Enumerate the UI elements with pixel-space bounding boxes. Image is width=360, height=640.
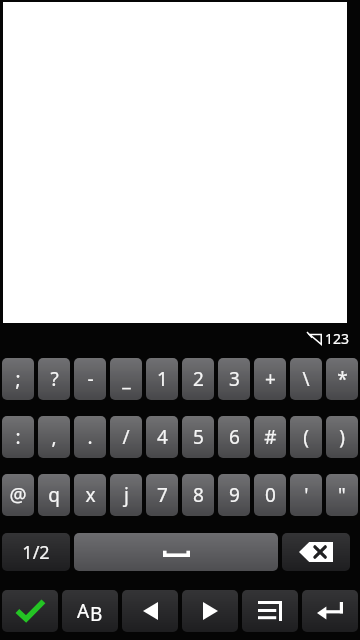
button[interactable]: x — [74, 474, 106, 516]
button[interactable]: * — [326, 358, 358, 400]
button[interactable]: + — [254, 358, 286, 400]
staticText: x — [85, 482, 96, 508]
staticText: / — [122, 424, 130, 450]
button[interactable]: j — [110, 474, 142, 516]
staticText: ' — [304, 482, 309, 508]
staticText: \ — [302, 366, 310, 392]
button[interactable]: Left — [122, 590, 178, 632]
staticText: + — [265, 366, 276, 392]
button[interactable]: 1 — [146, 358, 178, 400]
staticText: q — [48, 482, 60, 508]
staticText: " — [338, 482, 346, 508]
button[interactable]: q — [38, 474, 70, 516]
staticText: ? — [50, 366, 59, 392]
button[interactable]: Letters — [62, 590, 118, 632]
staticText: 1/2 — [22, 540, 50, 565]
button[interactable]: 1/2 — [2, 533, 70, 571]
button[interactable]: @ — [2, 474, 34, 516]
staticText: 2 — [193, 366, 204, 392]
button[interactable]: _ — [110, 358, 142, 400]
staticText: 4 — [157, 424, 168, 450]
button[interactable]: ; — [2, 358, 34, 400]
button[interactable]: Enter — [302, 590, 358, 632]
button[interactable]: 7 — [146, 474, 178, 516]
button[interactable]: ( — [290, 416, 322, 458]
button[interactable]: 9 — [218, 474, 250, 516]
staticText: , — [51, 424, 57, 450]
button[interactable]: 4 — [146, 416, 178, 458]
button[interactable]: 2 — [182, 358, 214, 400]
button[interactable]: - — [74, 358, 106, 400]
button[interactable]: 8 — [182, 474, 214, 516]
button[interactable]: : — [2, 416, 34, 458]
button[interactable]: 3 — [218, 358, 250, 400]
staticText: 7 — [157, 482, 168, 508]
button[interactable]: \ — [290, 358, 322, 400]
staticText: 9 — [229, 482, 240, 508]
staticText: - — [87, 366, 94, 392]
staticText: 123 — [325, 329, 350, 348]
button[interactable]: Confirm — [2, 590, 58, 632]
staticText: A — [77, 598, 90, 624]
button[interactable]: ? — [38, 358, 70, 400]
staticText: 1 — [157, 366, 168, 392]
button[interactable]: / — [110, 416, 142, 458]
button[interactable]: Space — [74, 533, 278, 571]
button[interactable]: Right — [182, 590, 238, 632]
staticText: 6 — [229, 424, 240, 450]
staticText: j — [124, 482, 129, 508]
staticText: 5 — [193, 424, 204, 450]
staticText: # — [264, 424, 277, 450]
button[interactable]: ) — [326, 416, 358, 458]
button[interactable]: Menu — [242, 590, 298, 632]
button[interactable]: , — [38, 416, 70, 458]
button[interactable]: ' — [290, 474, 322, 516]
staticText: ; — [15, 366, 21, 392]
button[interactable]: . — [74, 416, 106, 458]
staticText: 3 — [229, 366, 240, 392]
button[interactable]: 0 — [254, 474, 286, 516]
button[interactable]: " — [326, 474, 358, 516]
staticText: ) — [339, 424, 345, 450]
button[interactable]: Backspace — [282, 533, 350, 571]
button[interactable]: 5 — [182, 416, 214, 458]
button[interactable]: # — [254, 416, 286, 458]
staticText: B — [90, 601, 103, 627]
staticText: @ — [9, 482, 27, 508]
staticText: . — [87, 424, 93, 450]
staticText: ( — [303, 424, 309, 450]
staticText: 0 — [265, 482, 276, 508]
staticText: 8 — [193, 482, 204, 508]
staticText: : — [15, 424, 21, 450]
staticText: * — [337, 366, 348, 392]
staticText: _ — [122, 366, 131, 392]
button[interactable]: 6 — [218, 416, 250, 458]
